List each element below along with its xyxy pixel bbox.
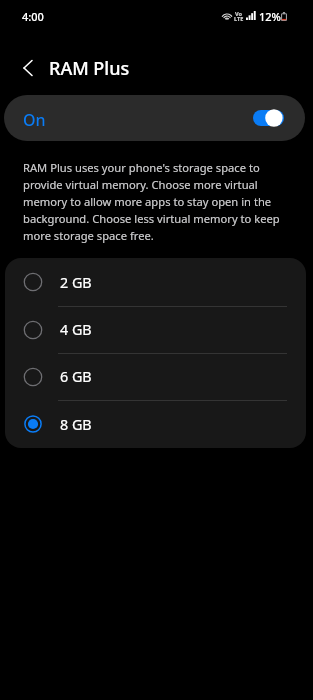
button[interactable]: 4 GB — [5, 306, 306, 353]
staticText: 2 GB — [60, 273, 92, 292]
staticText: Vo — [235, 10, 243, 18]
button[interactable]: RAM Plus on/off switch — [253, 109, 284, 127]
staticText: 4:00 — [22, 9, 44, 24]
button[interactable]: 8 GB — [5, 400, 306, 448]
staticText: RAM Plus — [49, 56, 130, 81]
button[interactable]: 2 GB — [5, 258, 306, 306]
staticText: 6 GB — [60, 367, 92, 386]
staticText: 8 GB — [60, 415, 92, 434]
button[interactable]: 6 GB — [5, 353, 306, 400]
staticText: 4 GB — [60, 320, 92, 339]
button[interactable]: Back — [11, 51, 45, 85]
staticText: RAM Plus uses your phone's storage space… — [23, 160, 291, 243]
staticText: On — [23, 109, 46, 131]
staticText: 12% — [259, 9, 281, 24]
button[interactable]: On — [4, 95, 305, 141]
staticText: LTE — [234, 15, 244, 23]
